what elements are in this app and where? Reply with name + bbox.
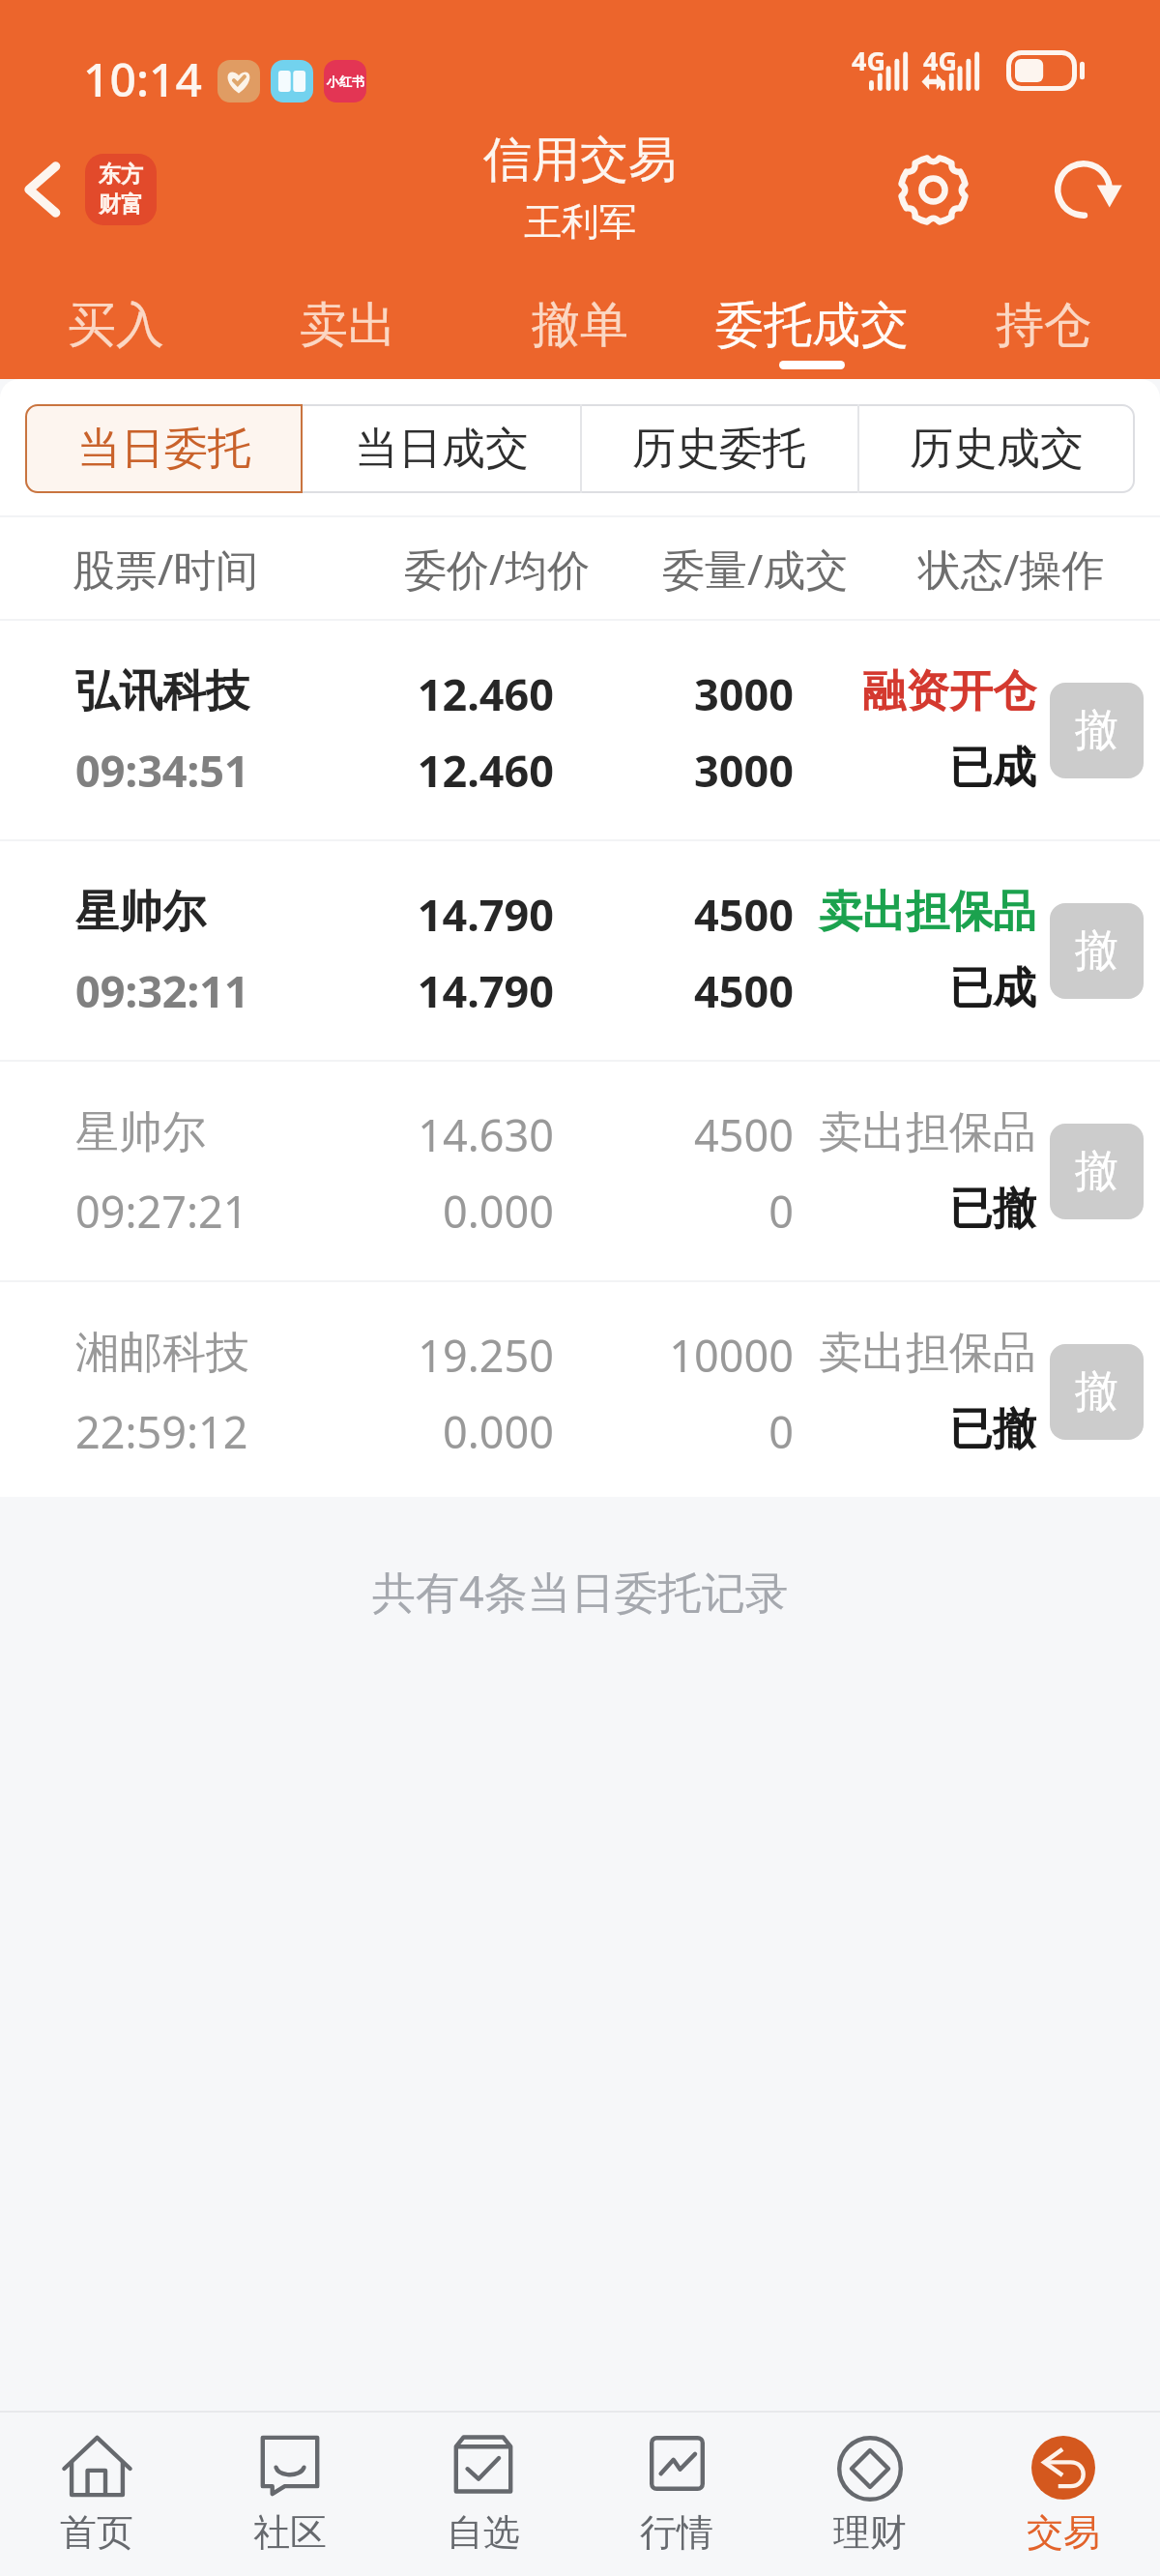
button[interactable]: 历史委托: [580, 404, 857, 493]
staticText: 4500: [581, 961, 794, 1020]
staticText: 小红书: [327, 73, 364, 89]
staticText: 12.460: [264, 741, 554, 800]
staticText: 社区: [253, 2509, 327, 2556]
staticText: 股票/时间: [72, 540, 259, 598]
staticText: 卖出: [300, 295, 396, 356]
staticText: 14.790: [264, 885, 554, 944]
staticText: 已撤: [737, 1182, 1036, 1237]
staticText: 14.790: [264, 961, 554, 1020]
button[interactable]: 弘讯科技: [0, 621, 1160, 839]
staticText: 19.250: [264, 1326, 554, 1385]
staticText: 09:27:21: [75, 1182, 248, 1241]
staticText: 自选: [447, 2509, 520, 2556]
staticText: 已撤: [737, 1402, 1036, 1457]
staticText: 卖出担保品: [737, 885, 1036, 940]
button[interactable]: 刷新: [1031, 137, 1136, 242]
button[interactable]: 卖出: [232, 255, 464, 379]
staticText: 当日成交: [355, 422, 529, 477]
staticText: 撤: [1075, 1364, 1118, 1420]
staticText: 王利军: [524, 198, 637, 246]
button[interactable]: 撤: [1050, 1344, 1144, 1440]
staticText: 4G: [852, 43, 885, 78]
staticText: 信用交易: [483, 130, 677, 190]
staticText: 0: [581, 1402, 794, 1461]
staticText: 3000: [581, 741, 794, 800]
button[interactable]: 自选: [387, 2411, 580, 2576]
staticText: 0: [581, 1182, 794, 1241]
staticText: 持仓: [996, 295, 1092, 356]
staticText: 首页: [60, 2509, 133, 2556]
staticText: 已成: [737, 961, 1036, 1016]
staticText: 10000: [581, 1326, 794, 1385]
staticText: 历史成交: [910, 422, 1084, 477]
staticText: 卖出担保品: [737, 1105, 1036, 1160]
button[interactable]: 当日委托: [25, 404, 303, 493]
staticText: 09:32:11: [75, 961, 249, 1020]
staticText: 历史委托: [632, 422, 806, 477]
staticText: 东方: [99, 161, 143, 189]
button[interactable]: 撤: [1050, 1124, 1144, 1219]
staticText: 委量/成交: [662, 540, 849, 598]
staticText: 撤: [1075, 703, 1118, 758]
staticText: 4G: [923, 43, 957, 78]
staticText: 4500: [581, 885, 794, 944]
staticText: 22:59:12: [75, 1402, 248, 1461]
staticText: 卖出担保品: [737, 1326, 1036, 1381]
button[interactable]: 理财: [773, 2411, 967, 2576]
staticText: 0.000: [264, 1402, 554, 1461]
staticText: 共有4条当日委托记录: [372, 1562, 789, 1621]
staticText: 12.460: [264, 664, 554, 723]
staticText: 湘邮科技: [75, 1326, 249, 1381]
staticText: 买入: [68, 295, 164, 356]
button[interactable]: 当日成交: [303, 404, 580, 493]
button[interactable]: 首页: [0, 2411, 193, 2576]
staticText: 10:14: [83, 47, 202, 110]
staticText: 交易: [1027, 2509, 1100, 2556]
staticText: 0.000: [264, 1182, 554, 1241]
staticText: 融资开仓: [737, 664, 1036, 719]
button[interactable]: 撤: [1050, 683, 1144, 778]
staticText: 撤单: [532, 295, 628, 356]
staticText: 14.630: [264, 1105, 554, 1164]
button[interactable]: 星帅尔: [0, 1062, 1160, 1280]
staticText: 行情: [640, 2509, 713, 2556]
staticText: 撤: [1075, 1144, 1118, 1199]
button[interactable]: 买入: [0, 255, 232, 379]
staticText: 星帅尔: [75, 885, 206, 940]
button[interactable]: 行情: [580, 2411, 773, 2576]
button[interactable]: 返回: [10, 136, 172, 243]
button[interactable]: 星帅尔: [0, 841, 1160, 1060]
staticText: 财富: [99, 190, 143, 219]
staticText: 委托成交: [715, 295, 909, 356]
button[interactable]: 历史成交: [857, 404, 1135, 493]
staticText: 弘讯科技: [75, 664, 249, 719]
staticText: 4500: [581, 1105, 794, 1164]
button[interactable]: 撤单: [464, 255, 696, 379]
button[interactable]: 湘邮科技: [0, 1282, 1160, 1497]
button[interactable]: 交易: [967, 2411, 1160, 2576]
button[interactable]: 设置: [881, 137, 985, 242]
staticText: 已成: [737, 741, 1036, 796]
staticText: 状态/操作: [918, 540, 1105, 598]
staticText: 理财: [833, 2509, 907, 2556]
button[interactable]: 撤: [1050, 903, 1144, 999]
staticText: 星帅尔: [75, 1105, 206, 1160]
staticText: 3000: [581, 664, 794, 723]
staticText: 撤: [1075, 923, 1118, 979]
button[interactable]: 持仓: [928, 255, 1160, 379]
button[interactable]: 社区: [193, 2411, 387, 2576]
button[interactable]: 委托成交: [696, 255, 928, 379]
staticText: 当日委托: [77, 422, 251, 477]
staticText: 09:34:51: [75, 741, 249, 800]
staticText: 委价/均价: [404, 540, 591, 598]
